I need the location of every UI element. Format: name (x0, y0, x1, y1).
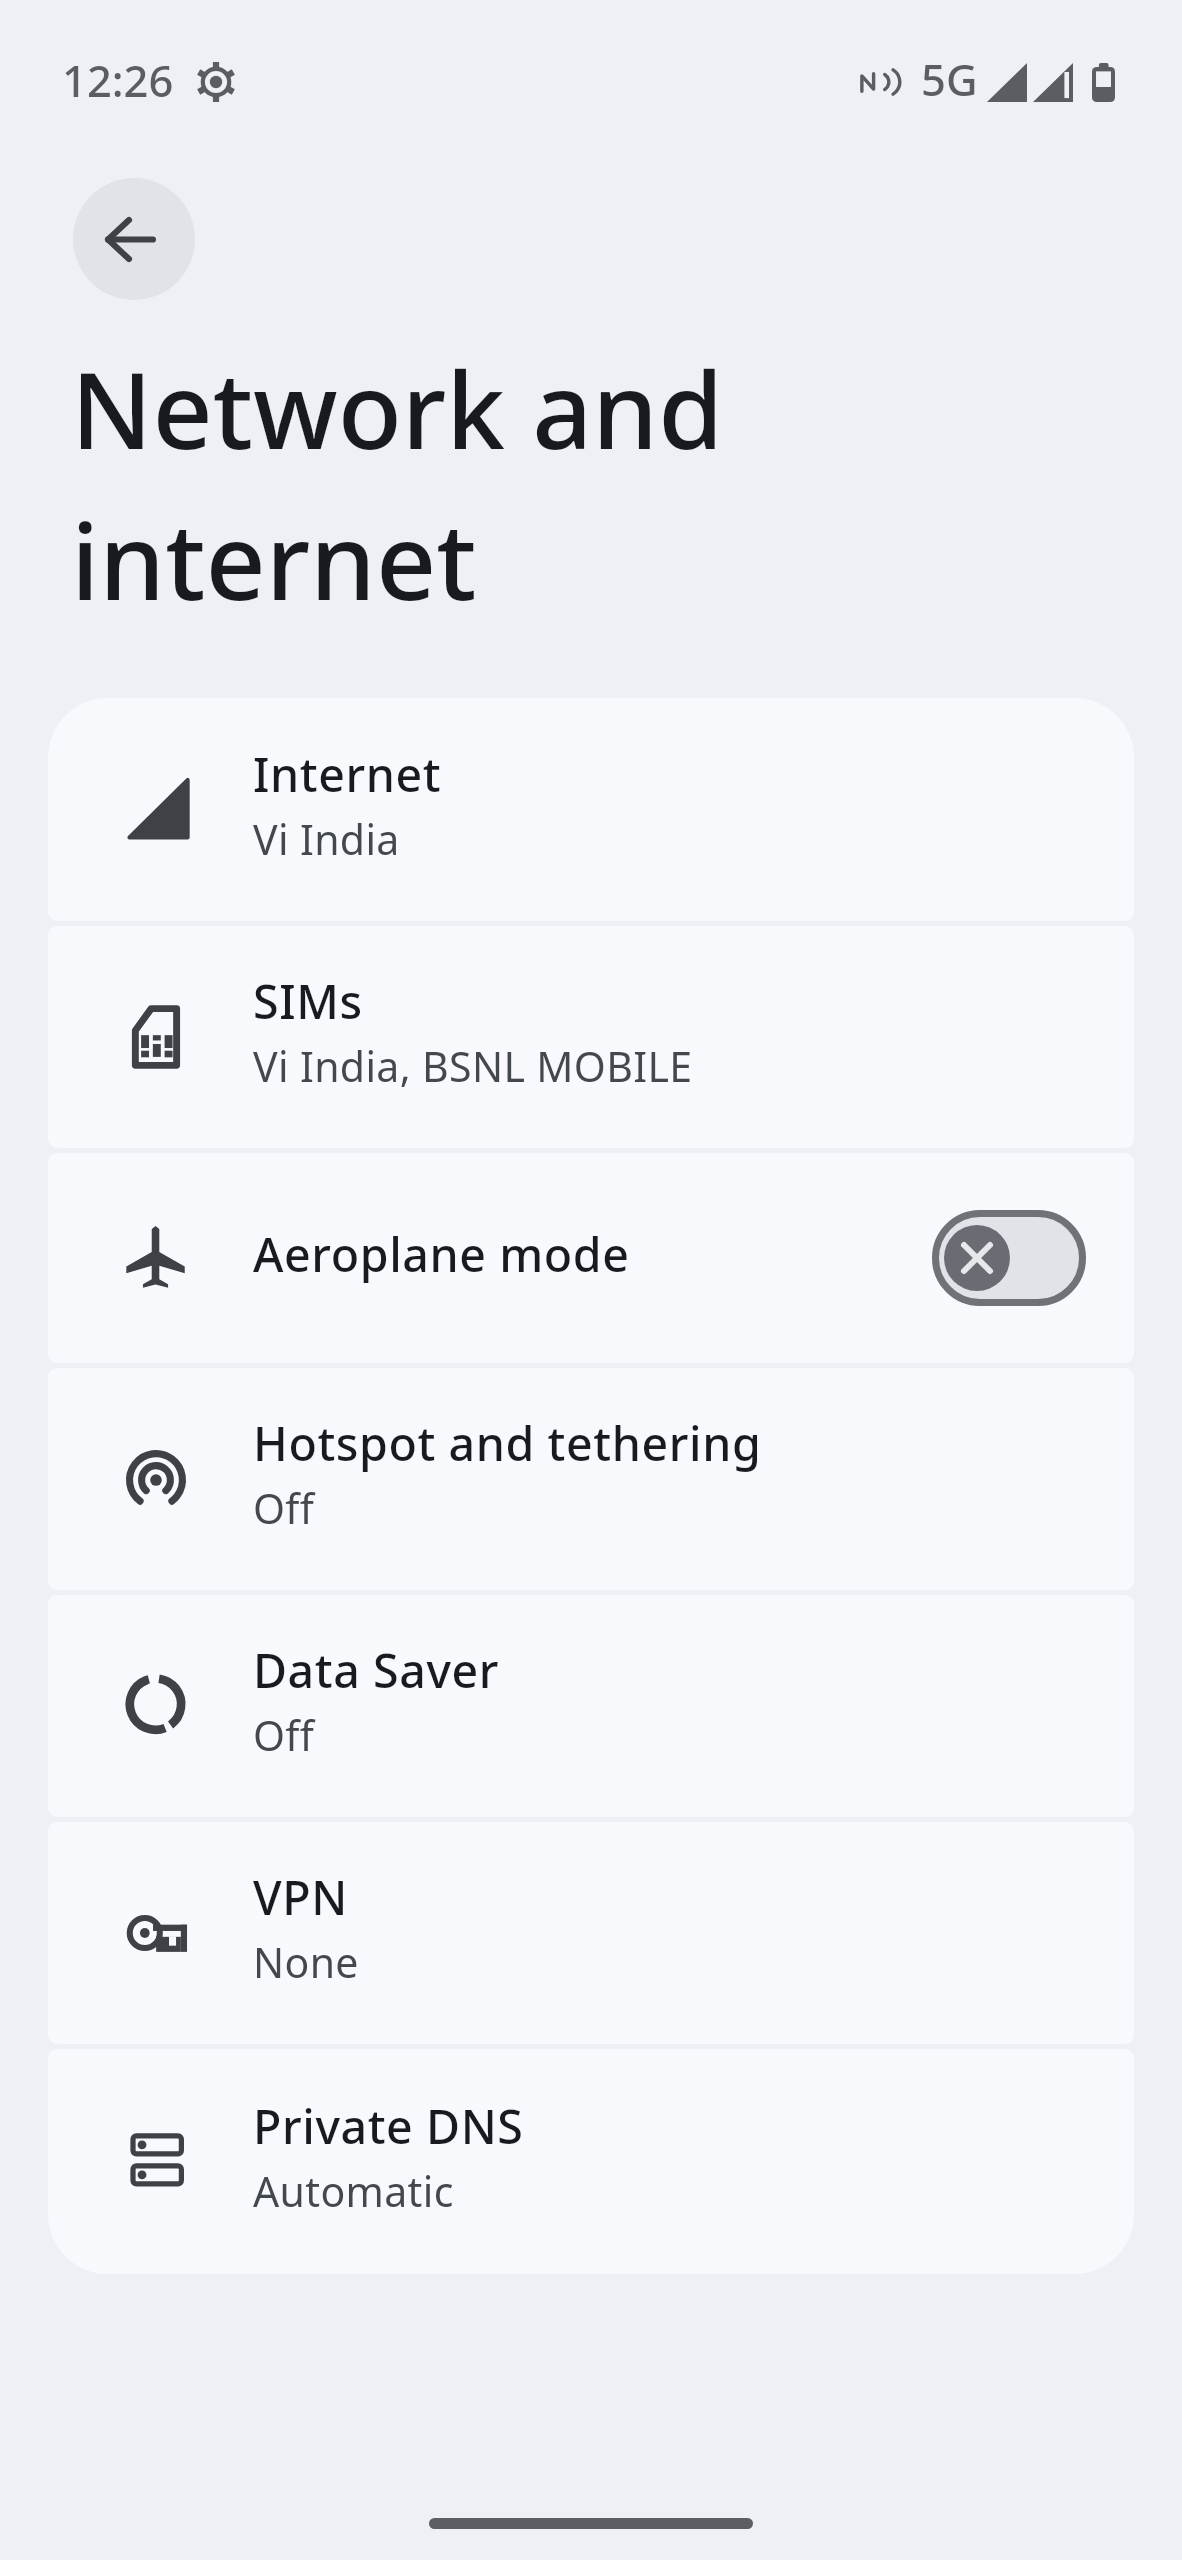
staticText: VPN (253, 1871, 348, 1927)
staticText: Off (253, 1485, 315, 1535)
staticText: Network and internet (71, 330, 724, 632)
button[interactable]: VPN (48, 1822, 1134, 2044)
button[interactable]: Back (73, 178, 195, 300)
staticText: Internet (253, 748, 442, 804)
staticText: Vi India (253, 816, 400, 866)
staticText: Private DNS (253, 2100, 524, 2156)
staticText: Vi India, BSNL MOBILE (253, 1043, 693, 1093)
button[interactable]: SIMs (48, 926, 1134, 1148)
button[interactable]: Aeroplane mode (932, 1210, 1086, 1306)
button[interactable]: Private DNS (48, 2049, 1134, 2274)
button[interactable]: Data Saver (48, 1595, 1134, 1817)
staticText: Aeroplane mode (253, 1228, 630, 1284)
staticText: 5G (921, 49, 978, 108)
staticText: Off (253, 1712, 315, 1762)
staticText: Hotspot and tethering (253, 1417, 762, 1473)
staticText: Data Saver (253, 1644, 500, 1700)
button[interactable]: Aeroplane mode (48, 1153, 1134, 1363)
staticText: SIMs (253, 975, 363, 1031)
button[interactable]: Internet (48, 698, 1134, 921)
button[interactable]: Hotspot and tethering (48, 1368, 1134, 1590)
staticText: Automatic (253, 2168, 454, 2218)
staticText: 12:26 (62, 50, 174, 109)
staticText: None (253, 1939, 359, 1989)
